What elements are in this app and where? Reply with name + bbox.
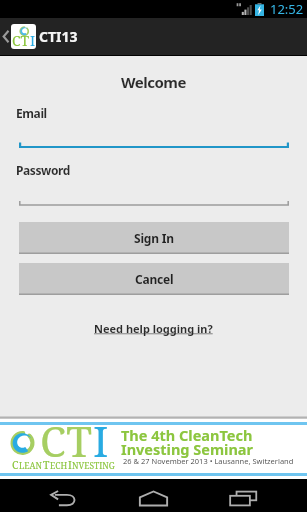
staticText: T (43, 458, 50, 472)
staticText: Investing Seminar (121, 439, 253, 459)
staticText: Email (16, 105, 47, 121)
staticText: 12:52 (270, 0, 304, 18)
staticText: 26 & 27 November 2013 • Lausanne, Switze… (123, 456, 294, 466)
staticText: ECH (50, 460, 68, 472)
staticText: C (12, 458, 19, 472)
staticText: CT (40, 412, 93, 457)
staticText: Cancel (135, 271, 174, 287)
staticText: Password (16, 162, 70, 178)
staticText: Sign In (134, 230, 174, 246)
staticText: CT (12, 31, 30, 49)
staticText: The 4th CleanTech (121, 425, 253, 445)
button[interactable]: Navigate up (1, 18, 11, 55)
staticText: I (68, 458, 72, 472)
button[interactable]: Cancel (19, 263, 289, 295)
button[interactable]: CT (0, 425, 307, 473)
staticText: I (93, 412, 109, 457)
button[interactable]: Back (30, 479, 96, 512)
staticText: CTI13 (39, 27, 78, 46)
button[interactable]: Sign In (19, 222, 289, 254)
staticText: I (30, 31, 36, 49)
staticText: Welcome (0, 72, 307, 92)
staticText: LEAN (19, 460, 43, 472)
button[interactable]: Recent apps (210, 479, 276, 512)
button[interactable]: Need help logging in? (88, 318, 219, 339)
button[interactable]: Home (120, 479, 186, 512)
button[interactable]: Password (15, 159, 289, 206)
staticText: Need help logging in? (94, 321, 213, 336)
staticText: NVESTING (72, 460, 115, 472)
button[interactable]: Email (15, 102, 289, 148)
